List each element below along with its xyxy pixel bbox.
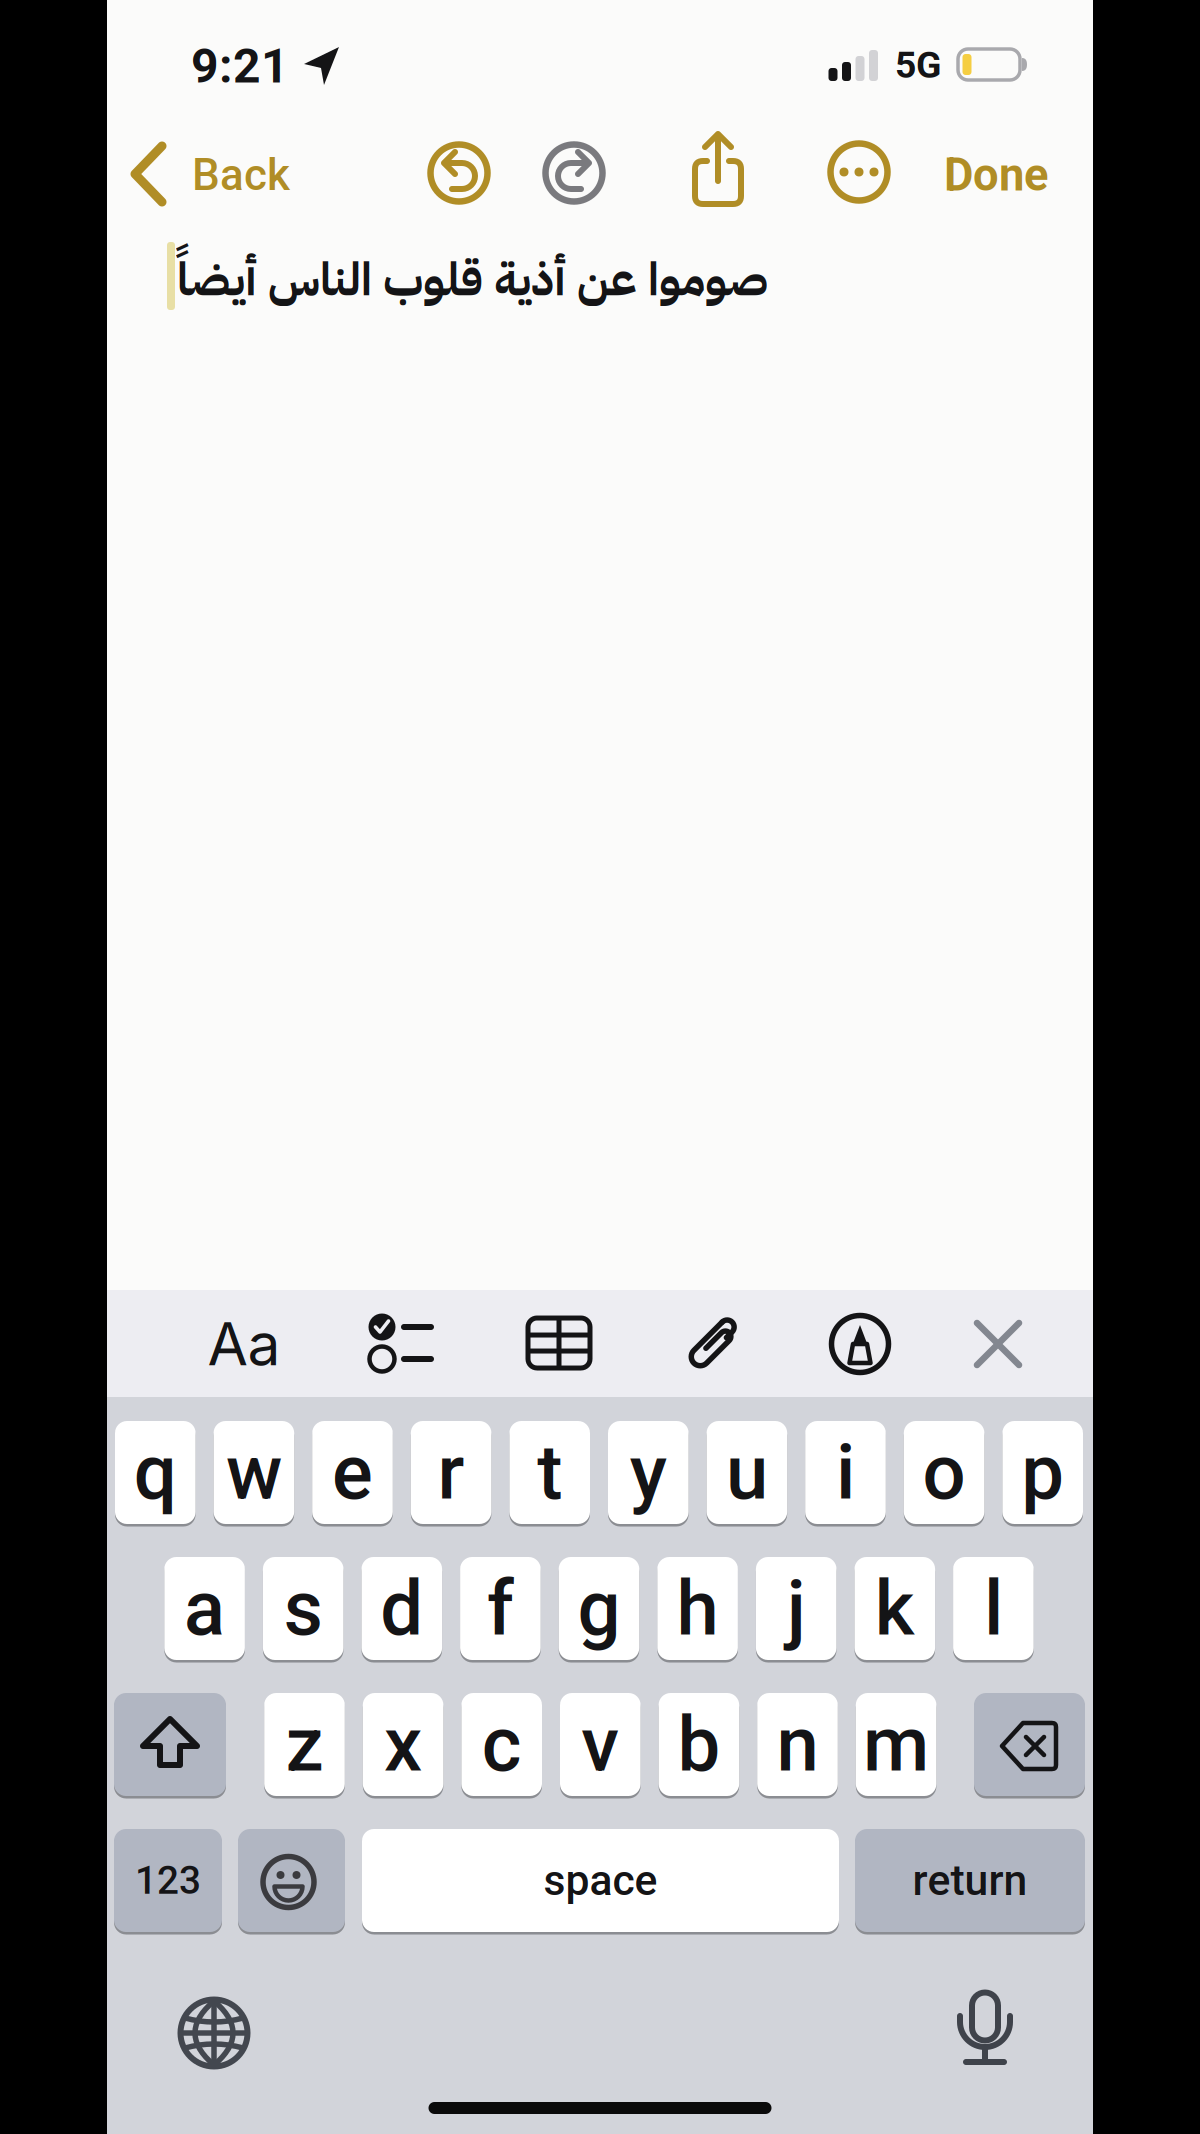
- button[interactable]: Share: [682, 124, 754, 214]
- staticText: k: [875, 1564, 915, 1653]
- button[interactable]: x: [0, 0, 1200, 2134]
- button[interactable]: Back: [120, 134, 300, 214]
- button[interactable]: c: [0, 0, 1200, 2134]
- staticText: l: [984, 1564, 1003, 1653]
- staticText: e: [332, 1428, 373, 1517]
- button[interactable]: v: [0, 0, 1200, 2134]
- staticText: c: [482, 1700, 522, 1789]
- button[interactable]: More: [823, 136, 895, 208]
- staticText: space: [543, 1855, 657, 1905]
- staticText: n: [776, 1700, 818, 1789]
- staticText: b: [677, 1700, 720, 1789]
- staticText: Done: [944, 148, 1048, 201]
- staticText: Back: [192, 149, 290, 201]
- staticText: j: [787, 1564, 806, 1653]
- button[interactable]: d: [0, 0, 1200, 2134]
- button[interactable]: m: [0, 0, 1200, 2134]
- button[interactable]: n: [0, 0, 1200, 2134]
- staticText: g: [577, 1564, 620, 1653]
- staticText: w: [226, 1428, 282, 1517]
- staticText: r: [438, 1428, 465, 1517]
- button[interactable]: Undo: [423, 137, 495, 209]
- staticText: z: [285, 1700, 323, 1789]
- button[interactable]: y: [0, 0, 1200, 2134]
- staticText: d: [380, 1564, 423, 1653]
- staticText: Aa: [207, 1308, 280, 1379]
- button[interactable]: u: [0, 0, 1200, 2134]
- staticText: صوموا عن أذية قلوب الناس أيضاً: [176, 246, 767, 314]
- button[interactable]: Attach: [681, 1309, 745, 1379]
- button[interactable]: w: [0, 0, 1200, 2134]
- button[interactable]: q: [0, 0, 1200, 2134]
- staticText: t: [537, 1428, 562, 1517]
- staticText: f: [487, 1564, 514, 1653]
- button[interactable]: Shift: [114, 1693, 226, 1796]
- staticText: q: [134, 1428, 177, 1517]
- button[interactable]: Emoji: [238, 1829, 345, 1932]
- button[interactable]: f: [0, 0, 1200, 2134]
- button[interactable]: 123: [0, 0, 1200, 2134]
- button[interactable]: h: [0, 0, 1200, 2134]
- button[interactable]: l: [0, 0, 1200, 2134]
- staticText: a: [184, 1564, 225, 1653]
- button[interactable]: s: [0, 0, 1200, 2134]
- staticText: h: [677, 1564, 719, 1653]
- staticText: u: [726, 1428, 768, 1517]
- button[interactable]: Redo: [538, 137, 610, 209]
- button[interactable]: Format: [207, 1308, 280, 1379]
- staticText: 123: [135, 1858, 201, 1903]
- button[interactable]: e: [0, 0, 1200, 2134]
- button[interactable]: Table: [523, 1313, 595, 1373]
- button[interactable]: a: [0, 0, 1200, 2134]
- button[interactable]: Done: [944, 148, 1048, 201]
- staticText: 5G: [895, 43, 941, 87]
- staticText: o: [923, 1428, 966, 1517]
- button[interactable]: Next keyboard: [174, 1993, 254, 2073]
- staticText: p: [1021, 1428, 1064, 1517]
- button[interactable]: z: [0, 0, 1200, 2134]
- staticText: s: [284, 1564, 323, 1653]
- button[interactable]: p: [0, 0, 1200, 2134]
- staticText: 9:21: [191, 38, 289, 94]
- button[interactable]: Markup: [826, 1310, 894, 1378]
- button[interactable]: Delete: [974, 1693, 1085, 1796]
- button[interactable]: Checklist: [363, 1312, 443, 1376]
- button[interactable]: k: [0, 0, 1200, 2134]
- button[interactable]: b: [0, 0, 1200, 2134]
- button[interactable]: Dismiss keyboard: [965, 1311, 1031, 1377]
- button[interactable]: g: [0, 0, 1200, 2134]
- staticText: i: [836, 1428, 855, 1517]
- button[interactable]: r: [0, 0, 1200, 2134]
- button[interactable]: space: [0, 0, 1200, 2134]
- staticText: return: [912, 1855, 1027, 1905]
- button[interactable]: Dictate: [950, 1988, 1020, 2068]
- button[interactable]: t: [0, 0, 1200, 2134]
- button[interactable]: j: [0, 0, 1200, 2134]
- button[interactable]: return: [0, 0, 1200, 2134]
- staticText: x: [384, 1700, 422, 1789]
- button[interactable]: o: [0, 0, 1200, 2134]
- staticText: m: [863, 1700, 929, 1789]
- staticText: v: [581, 1700, 619, 1789]
- staticText: y: [630, 1428, 667, 1517]
- button[interactable]: i: [0, 0, 1200, 2134]
